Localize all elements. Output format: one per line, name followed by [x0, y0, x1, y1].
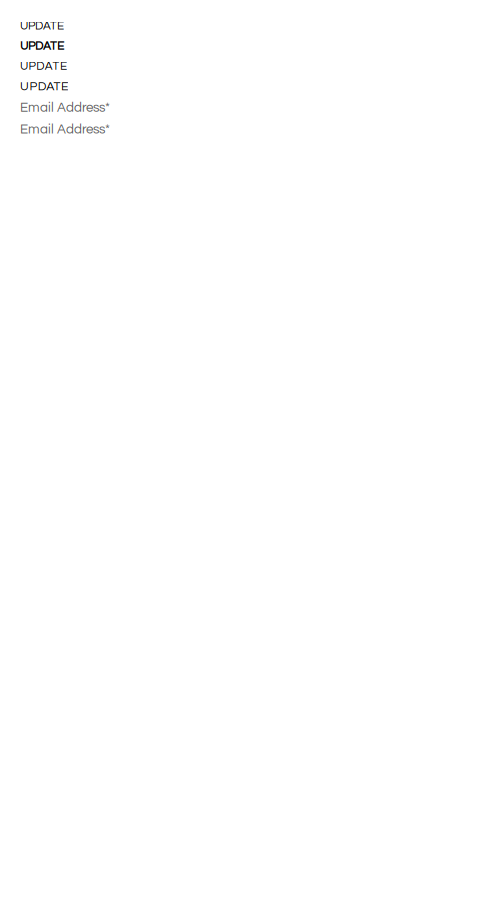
staticText: UPDATE — [20, 20, 64, 32]
staticText: Email Address* — [20, 101, 110, 115]
staticText: UPDATE — [20, 40, 64, 52]
staticText: UPDATE — [20, 80, 68, 93]
staticText: UPDATE — [20, 60, 67, 72]
staticText: Email Address* — [20, 123, 110, 136]
